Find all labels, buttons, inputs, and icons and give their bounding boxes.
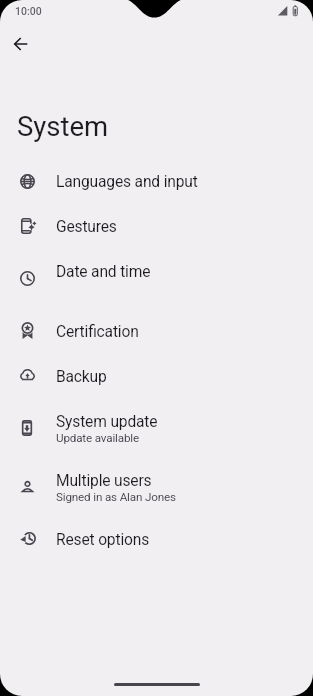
button[interactable]: Multiple users	[0, 458, 313, 517]
staticText: Date and time	[56, 263, 151, 281]
staticText: System update	[56, 413, 158, 431]
button[interactable]: System update	[0, 399, 313, 458]
button[interactable]: Reset options	[0, 517, 313, 562]
button[interactable]: Languages and input	[0, 159, 313, 204]
staticText: Update available	[56, 431, 139, 445]
staticText: Languages and input	[56, 173, 198, 191]
button[interactable]: Date and time	[0, 249, 313, 294]
button[interactable]: Navigate up	[10, 33, 32, 55]
button[interactable]: Backup	[0, 354, 313, 399]
staticText: Multiple users	[56, 472, 152, 490]
staticText: Certification	[56, 323, 139, 341]
staticText: Backup	[56, 368, 107, 386]
button[interactable]: Gestures	[0, 204, 313, 249]
staticText: Gestures	[56, 218, 117, 236]
staticText: 10:00	[15, 5, 42, 17]
staticText: System	[17, 110, 109, 142]
staticText: Reset options	[56, 531, 150, 549]
staticText: Signed in as Alan Jones	[56, 490, 176, 504]
button[interactable]: Certification	[0, 309, 313, 354]
